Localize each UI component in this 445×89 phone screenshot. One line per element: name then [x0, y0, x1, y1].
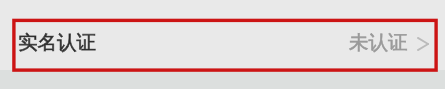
staticText: 未认证	[349, 30, 408, 55]
staticText: 实名认证	[18, 30, 96, 55]
other: 实名认证详情	[417, 37, 429, 51]
staticText: 实名认证	[18, 30, 96, 55]
staticText: 未认证	[349, 30, 408, 55]
button[interactable]: 实名认证	[0, 0, 445, 70]
